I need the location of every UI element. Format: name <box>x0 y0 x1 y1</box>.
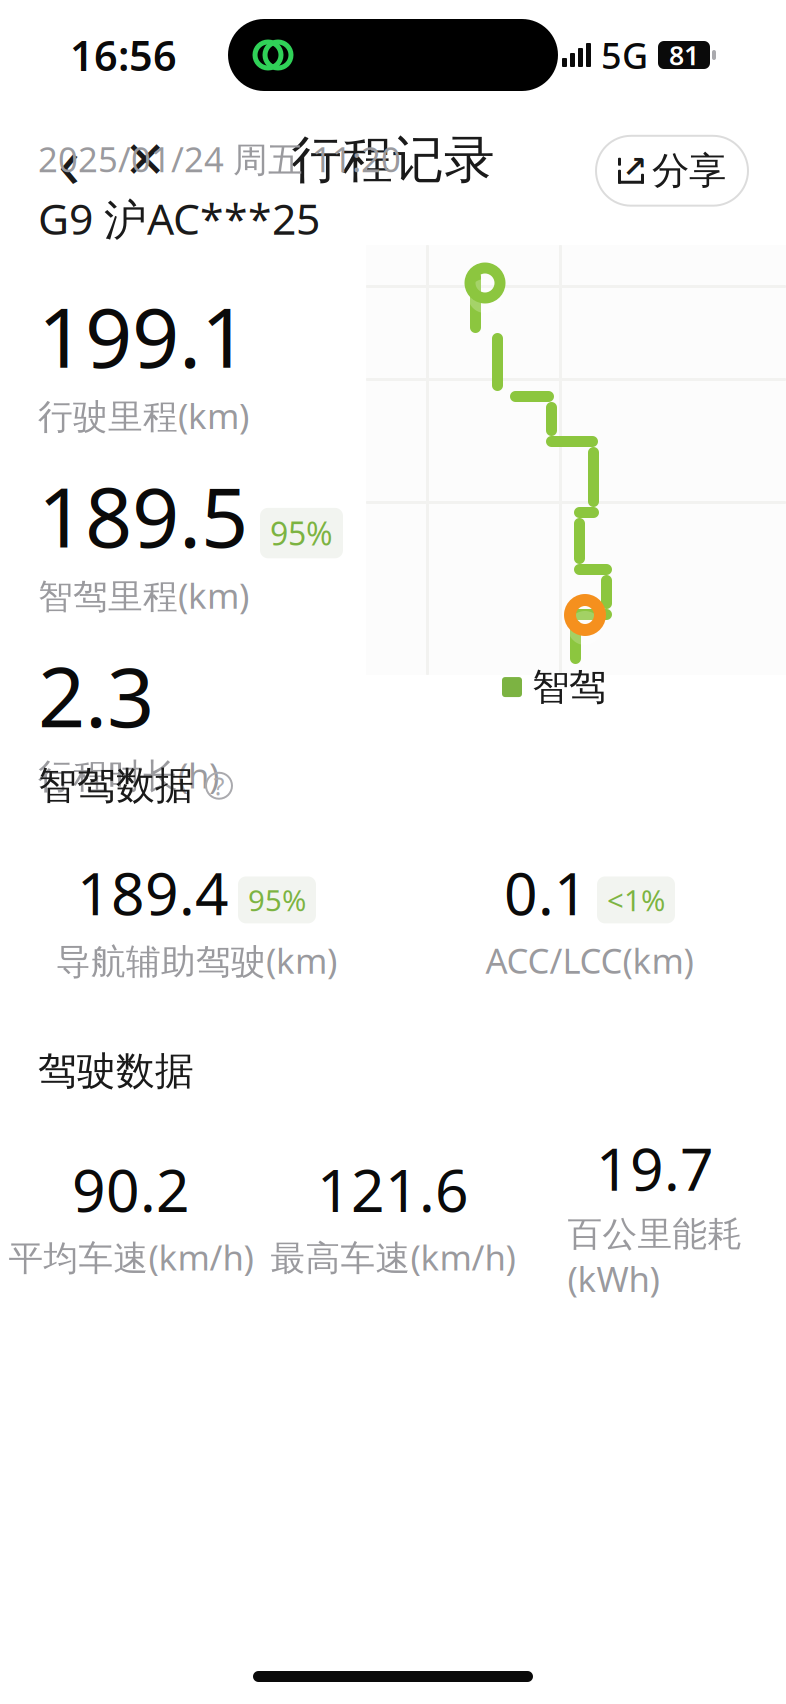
staticText: 行驶里程(km) <box>38 392 249 438</box>
staticText: ↗ <box>622 150 647 183</box>
staticText: 19.7 <box>596 1129 714 1207</box>
staticText: 81 <box>669 37 699 73</box>
staticText: 智驾里程(km) <box>38 572 249 618</box>
staticText: 16:56 <box>70 28 177 82</box>
staticText: 90.2 <box>72 1150 190 1228</box>
staticText: 189.5 <box>38 461 248 570</box>
button[interactable]: Close <box>114 120 176 200</box>
staticText: ‹ <box>58 112 80 208</box>
staticText: 2025/01/24 周五 11:20 <box>38 136 401 182</box>
staticText: 121.6 <box>317 1150 469 1228</box>
staticText: 驾驶数据 <box>38 1047 194 1095</box>
staticText: 0.1 <box>504 853 588 931</box>
staticText: 百公里能耗(kWh) <box>567 1213 742 1301</box>
staticText: 199.1 <box>38 281 248 390</box>
staticText: ✕ <box>124 131 166 189</box>
staticText: 智驾 <box>532 664 606 710</box>
button[interactable]: Back <box>38 120 100 200</box>
staticText: 分享 <box>652 148 726 194</box>
staticText: ? <box>213 769 224 802</box>
staticText: 智驾数据 <box>38 762 194 809</box>
staticText: 导航辅助驾驶(km) <box>56 937 337 983</box>
staticText: 平均车速(km/h) <box>8 1234 253 1280</box>
staticText: 189.4 <box>77 853 229 931</box>
staticText: 2.3 <box>38 640 154 750</box>
staticText: 5G <box>601 31 648 79</box>
staticText: 行程时长(h) <box>38 752 219 798</box>
staticText: 行程记录 <box>291 129 495 191</box>
staticText: 95% <box>270 512 333 554</box>
staticText: <1% <box>607 880 665 919</box>
button[interactable]: About autonomous driving data <box>202 769 236 803</box>
staticText: ACC/LCC(km) <box>485 937 693 983</box>
staticText: 95% <box>248 880 306 919</box>
button[interactable]: ↗ <box>596 136 748 206</box>
staticText: G9 沪AC***25 <box>38 190 320 247</box>
staticText: 最高车速(km/h) <box>270 1234 515 1280</box>
